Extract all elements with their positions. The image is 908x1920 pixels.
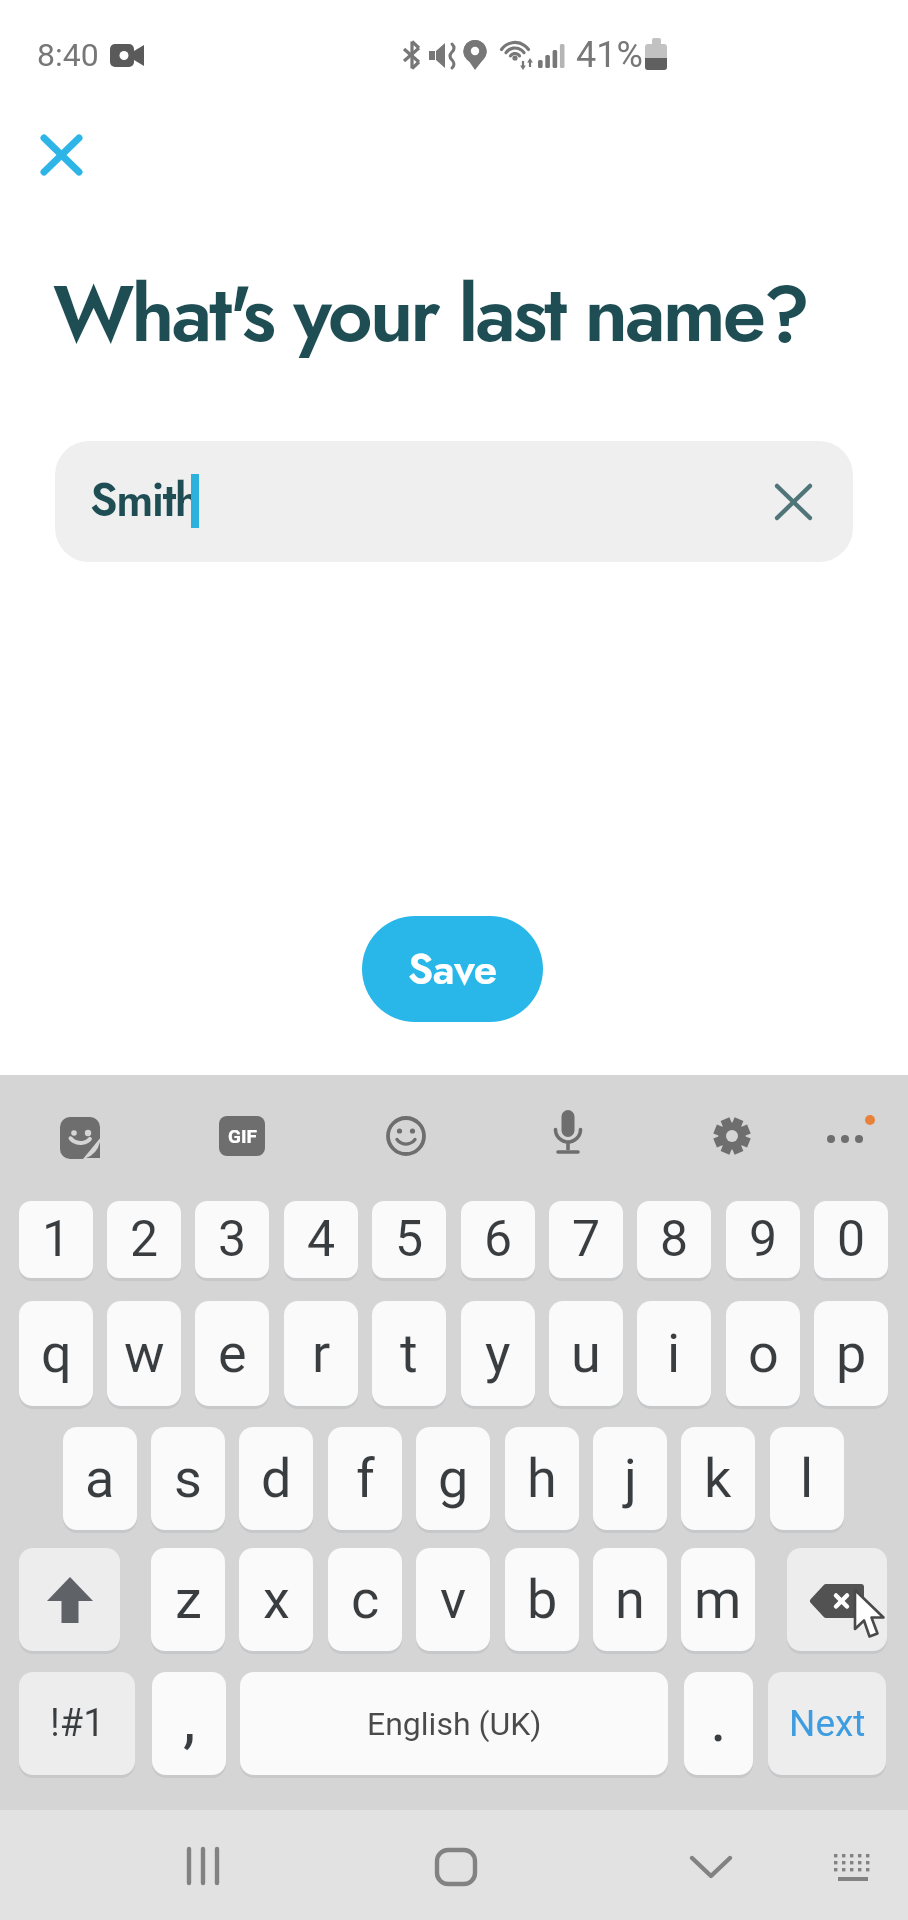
button[interactable] (55, 441, 853, 562)
button[interactable] (19, 1548, 120, 1651)
button[interactable]: 6 (461, 1201, 535, 1278)
button[interactable]: q (19, 1301, 93, 1406)
button[interactable]: 9 (726, 1201, 800, 1278)
button[interactable]: . (684, 1672, 753, 1775)
button[interactable]: d (239, 1427, 313, 1530)
button[interactable]: y (461, 1301, 535, 1406)
button[interactable]: 4 (284, 1201, 358, 1278)
button[interactable]: l (770, 1427, 844, 1530)
button[interactable]: g (416, 1427, 490, 1530)
button[interactable]: b (505, 1548, 579, 1651)
staticText: s (174, 1447, 202, 1510)
button[interactable]: !#1 (19, 1672, 135, 1775)
staticText: . (710, 1682, 727, 1757)
staticText: d (261, 1447, 292, 1510)
button[interactable]: f (328, 1427, 402, 1530)
button[interactable]: 8 (637, 1201, 711, 1278)
button[interactable]: English (UK) (240, 1672, 668, 1775)
button[interactable]: 2 (107, 1201, 181, 1278)
staticText: 6 (484, 1210, 513, 1269)
staticText: y (485, 1322, 511, 1385)
button[interactable] (381, 1111, 431, 1161)
staticText: , (183, 1682, 196, 1757)
staticText: 1 (42, 1210, 71, 1269)
staticText: 0 (837, 1210, 866, 1269)
button[interactable]: a (63, 1427, 137, 1530)
staticText: q (41, 1322, 72, 1385)
button[interactable] (818, 1832, 888, 1902)
staticText: g (438, 1447, 469, 1510)
staticText: Smith (90, 467, 199, 533)
button[interactable] (545, 1108, 591, 1162)
staticText: p (836, 1322, 867, 1385)
staticText: 2 (130, 1210, 159, 1269)
button[interactable]: i (637, 1301, 711, 1406)
button[interactable]: s (151, 1427, 225, 1530)
staticText: !#1 (50, 1701, 105, 1746)
staticText: f (356, 1447, 375, 1510)
button[interactable] (787, 1548, 887, 1651)
button[interactable]: Next (768, 1672, 886, 1775)
button[interactable]: k (681, 1427, 755, 1530)
button[interactable]: h (505, 1427, 579, 1530)
staticText: j (624, 1447, 637, 1510)
button[interactable]: p (814, 1301, 888, 1406)
staticText: a (85, 1447, 115, 1510)
staticText: 41% (576, 34, 643, 76)
button[interactable] (707, 1111, 757, 1161)
staticText: 9 (749, 1210, 778, 1269)
button[interactable]: v (416, 1548, 490, 1651)
button[interactable] (57, 1111, 107, 1161)
staticText: Save (408, 939, 497, 1000)
staticText: z (175, 1568, 202, 1631)
staticText: o (748, 1322, 779, 1385)
staticText: c (351, 1568, 380, 1631)
staticText: n (615, 1568, 645, 1631)
staticText: 7 (572, 1210, 601, 1269)
staticText: k (704, 1447, 732, 1510)
button[interactable]: , (152, 1672, 226, 1775)
button[interactable]: c (328, 1548, 402, 1651)
staticText: i (667, 1322, 681, 1385)
button[interactable]: GIF (219, 1116, 265, 1156)
staticText: 5 (395, 1210, 424, 1269)
button[interactable]: u (549, 1301, 623, 1406)
staticText: w (124, 1322, 165, 1385)
button[interactable] (820, 1105, 882, 1161)
button[interactable]: e (195, 1301, 269, 1406)
staticText: English (UK) (367, 1705, 542, 1743)
staticText: t (400, 1322, 418, 1385)
button[interactable]: Save (362, 916, 543, 1022)
staticText: m (694, 1568, 742, 1631)
button[interactable]: w (107, 1301, 181, 1406)
button[interactable]: n (593, 1548, 667, 1651)
button[interactable]: m (681, 1548, 755, 1651)
button[interactable]: x (239, 1548, 313, 1651)
button[interactable] (168, 1832, 238, 1902)
button[interactable] (758, 467, 828, 537)
button[interactable]: o (726, 1301, 800, 1406)
staticText: e (218, 1322, 247, 1385)
button[interactable]: 5 (372, 1201, 446, 1278)
staticText: GIF (228, 1125, 257, 1147)
staticText: What's your last name? (53, 258, 808, 371)
button[interactable]: 3 (195, 1201, 269, 1278)
button[interactable]: t (372, 1301, 446, 1406)
staticText: 8 (660, 1210, 689, 1269)
staticText: x (263, 1568, 290, 1631)
button[interactable]: j (593, 1427, 667, 1530)
button[interactable]: 1 (19, 1201, 93, 1278)
staticText: 4 (307, 1210, 336, 1269)
button[interactable]: z (151, 1548, 225, 1651)
staticText: r (312, 1322, 331, 1385)
button[interactable]: 0 (814, 1201, 888, 1278)
staticText: h (527, 1447, 557, 1510)
staticText: u (571, 1322, 601, 1385)
button[interactable] (27, 121, 97, 191)
button[interactable] (421, 1832, 491, 1902)
staticText: Next (789, 1702, 866, 1745)
staticText: 8:40 (37, 36, 99, 74)
button[interactable]: r (284, 1301, 358, 1406)
button[interactable] (676, 1832, 746, 1902)
button[interactable]: 7 (549, 1201, 623, 1278)
